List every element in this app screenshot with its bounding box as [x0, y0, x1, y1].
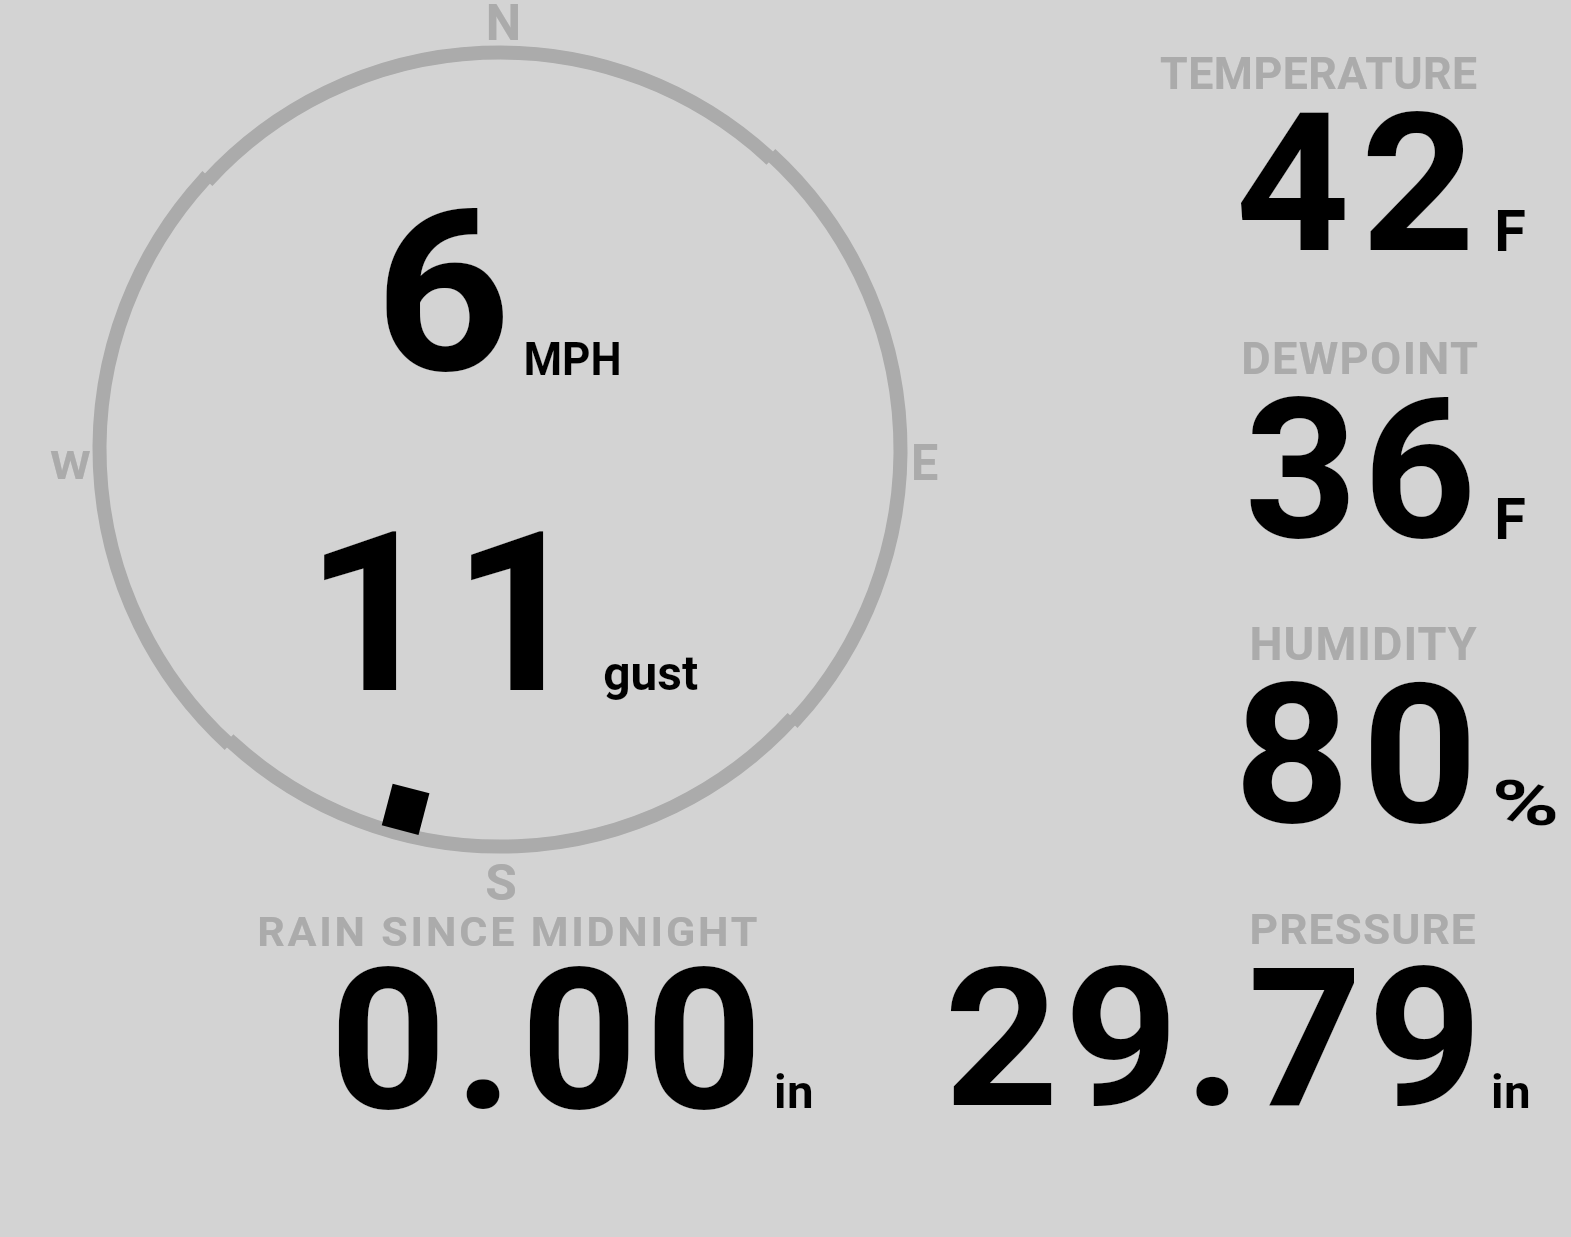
- button[interactable]: Rain since midnight 0.00 in: [200, 900, 840, 1130]
- button[interactable]: Pressure 29.79 in: [900, 900, 1571, 1130]
- button[interactable]: Humidity 80 percent: [1100, 600, 1571, 840]
- button[interactable]: Temperature 42 F: [1100, 30, 1571, 270]
- button[interactable]: Wind 6 MPH gusting 11, direction south s…: [40, 0, 1000, 910]
- button[interactable]: Dewpoint 36 F: [1100, 320, 1571, 560]
